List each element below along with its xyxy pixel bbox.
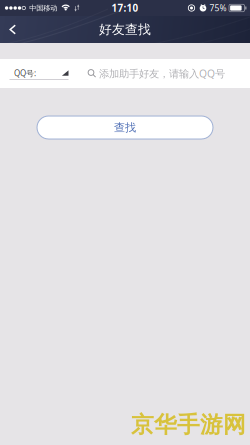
button[interactable]: Search type: QQ number [0,59,78,88]
staticText: 京华手游网 [131,410,246,439]
staticText: 17:10 [111,1,138,15]
staticText: 好友查找 [99,21,151,37]
button[interactable]: Enter QQ number [78,59,250,88]
staticText: 查找 [114,120,136,134]
staticText: 中国移动 [29,3,57,13]
staticText: 添加助手好友，请输入QQ号 [99,66,225,80]
button[interactable]: Back [0,16,27,43]
staticText: QQ号: [14,68,36,78]
staticText: 75% [209,2,226,14]
button[interactable]: 查找 [37,116,213,139]
